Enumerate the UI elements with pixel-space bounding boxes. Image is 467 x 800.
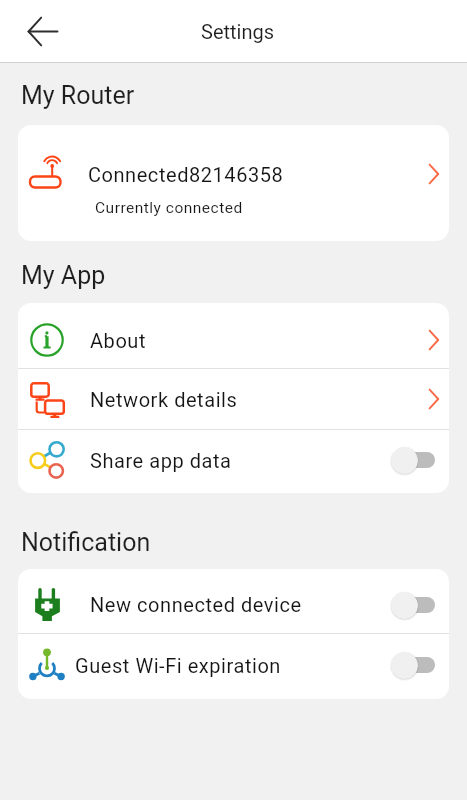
staticText: Settings [201,20,275,43]
staticText: Notification [21,528,151,557]
staticText: My App [21,261,106,290]
staticText: Currently connected [95,199,243,217]
staticText: Network details [90,388,429,411]
staticText: Share app data [90,449,391,472]
staticText: Guest Wi-Fi expiration [75,654,391,677]
staticText: New connected device [90,593,391,616]
staticText: About [90,329,429,352]
staticText: Connected82146358 [88,163,284,186]
staticText: My Router [21,81,135,110]
